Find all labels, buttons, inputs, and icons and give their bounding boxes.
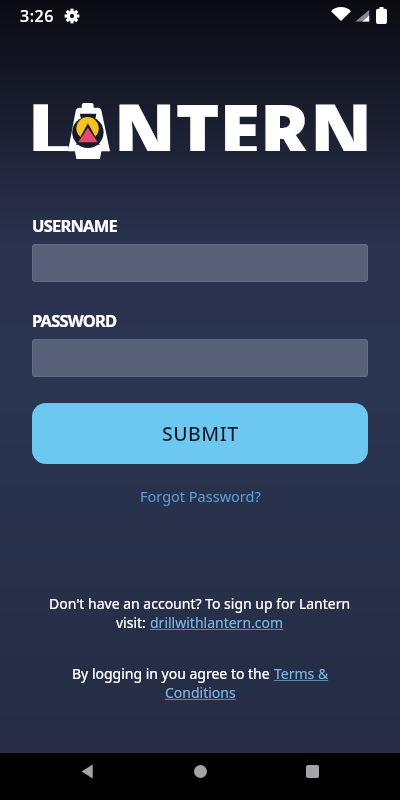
staticText: 3:26 bbox=[20, 5, 54, 27]
button[interactable]: Forgot Password? bbox=[140, 486, 261, 506]
button[interactable] bbox=[80, 764, 95, 779]
button[interactable]: drillwithlantern.com bbox=[150, 613, 284, 632]
staticText: visit: bbox=[116, 613, 150, 632]
button[interactable]: Conditions bbox=[165, 683, 236, 702]
button[interactable]: SUBMIT bbox=[32, 403, 368, 464]
staticText: NTERN bbox=[114, 79, 372, 151]
button[interactable] bbox=[194, 765, 207, 778]
staticText: L bbox=[28, 79, 72, 151]
staticText: By logging in you agree to the bbox=[72, 664, 274, 683]
staticText: SUBMIT bbox=[162, 420, 239, 447]
staticText: USERNAME bbox=[32, 214, 117, 236]
button[interactable] bbox=[306, 765, 319, 778]
staticText: PASSWORD bbox=[32, 309, 117, 331]
staticText: Don't have an account? To sign up for La… bbox=[49, 594, 351, 613]
button[interactable]: Terms & bbox=[274, 664, 329, 683]
